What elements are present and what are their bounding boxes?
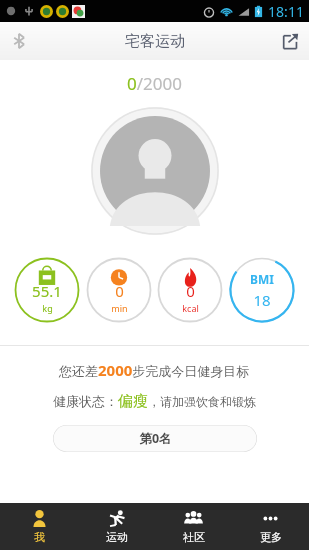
staticText: 第0名 [139,430,172,447]
button[interactable]: 更多 [232,503,309,550]
staticText: 运动 [106,530,128,544]
staticText: 0 [186,281,195,301]
staticText: 0 [115,281,124,301]
button[interactable]: 55.1 [14,257,80,323]
staticText: 55.1 [32,281,62,301]
staticText: 社区 [183,530,205,544]
staticText: BMI [250,271,274,287]
button[interactable]: 我 [0,503,78,550]
staticText: 18 [253,290,271,310]
button[interactable]: Share [271,22,309,60]
staticText: 0/2000 [127,72,182,95]
staticText: 我 [34,530,45,544]
staticText: 宅客运动 [125,32,185,51]
button[interactable]: 0 [157,257,223,323]
button[interactable]: BMI [229,257,295,323]
staticText: 18:11 [268,2,304,21]
button[interactable]: 运动 [78,503,155,550]
staticText: kg [42,302,53,314]
staticText: min [111,302,128,314]
button[interactable]: 0 [86,257,152,323]
button[interactable]: 社区 [155,503,232,550]
staticText: 健康状态：偏瘦，请加强饮食和锻炼 [53,392,256,411]
staticText: kcal [182,302,199,314]
button[interactable]: 第0名 [53,425,257,452]
staticText: 您还差2000步完成今日健身目标 [59,360,250,380]
staticText: 更多 [260,530,282,544]
button[interactable]: Bluetooth [0,22,38,60]
